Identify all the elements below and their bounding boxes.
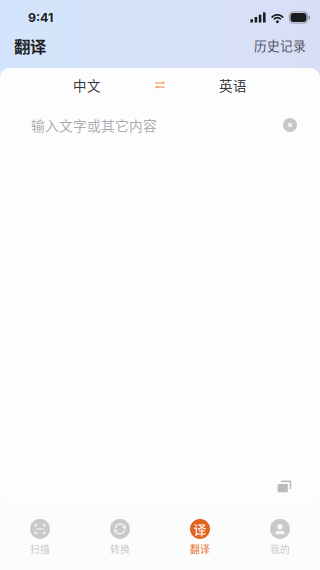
button[interactable]: 译 — [160, 503, 240, 569]
staticText: 英语 — [219, 75, 247, 95]
staticText: 我的 — [270, 542, 290, 556]
staticText: 扫描 — [30, 542, 50, 556]
staticText: 翻译 — [190, 542, 210, 556]
button[interactable]: 清除 — [277, 112, 303, 138]
button[interactable]: 切换语言 — [142, 68, 178, 102]
staticText: 中文 — [73, 75, 101, 95]
staticText: 历史记录 — [254, 36, 306, 54]
staticText: 译 — [193, 519, 206, 538]
button[interactable]: 历史记录 — [254, 36, 306, 55]
staticText: 输入文字或其它内容 — [31, 115, 157, 135]
button[interactable]: 中文 — [32, 68, 142, 102]
button[interactable]: 英语 — [178, 68, 288, 102]
button[interactable]: 复制 — [269, 472, 299, 500]
button[interactable]: 扫描 — [0, 503, 80, 569]
staticText: 转换 — [110, 542, 130, 556]
button[interactable]: 我的 — [240, 503, 320, 569]
staticText: 翻译 — [14, 34, 46, 57]
button[interactable]: 转换 — [80, 503, 160, 569]
staticText: 9:41 — [28, 10, 53, 25]
